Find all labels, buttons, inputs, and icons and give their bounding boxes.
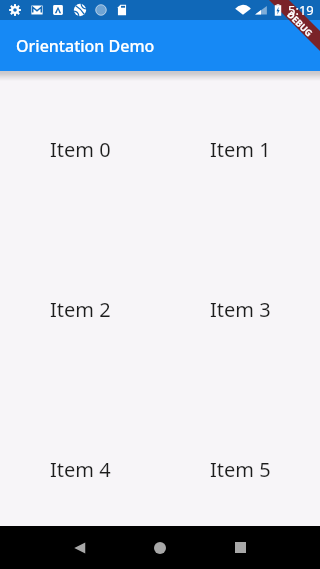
- staticText: Item 5: [210, 456, 271, 483]
- staticText: Item 2: [50, 296, 111, 323]
- button[interactable]: Item 1: [160, 71, 320, 229]
- button[interactable]: Back: [58, 526, 102, 569]
- button[interactable]: Item 4: [0, 389, 160, 526]
- staticText: Item 4: [50, 456, 111, 483]
- staticText: Orientation Demo: [16, 35, 155, 57]
- button[interactable]: Recents: [218, 526, 262, 569]
- button[interactable]: Item 2: [0, 229, 160, 389]
- staticText: Item 1: [210, 136, 271, 163]
- staticText: DEBUG: [285, 8, 316, 39]
- staticText: Item 0: [50, 136, 111, 163]
- staticText: Item 3: [210, 296, 271, 323]
- button[interactable]: Home: [138, 526, 182, 569]
- button[interactable]: Item 0: [0, 71, 160, 229]
- button[interactable]: Item 3: [160, 229, 320, 389]
- button[interactable]: Item 5: [160, 389, 320, 526]
- staticText: 5:19: [288, 1, 314, 19]
